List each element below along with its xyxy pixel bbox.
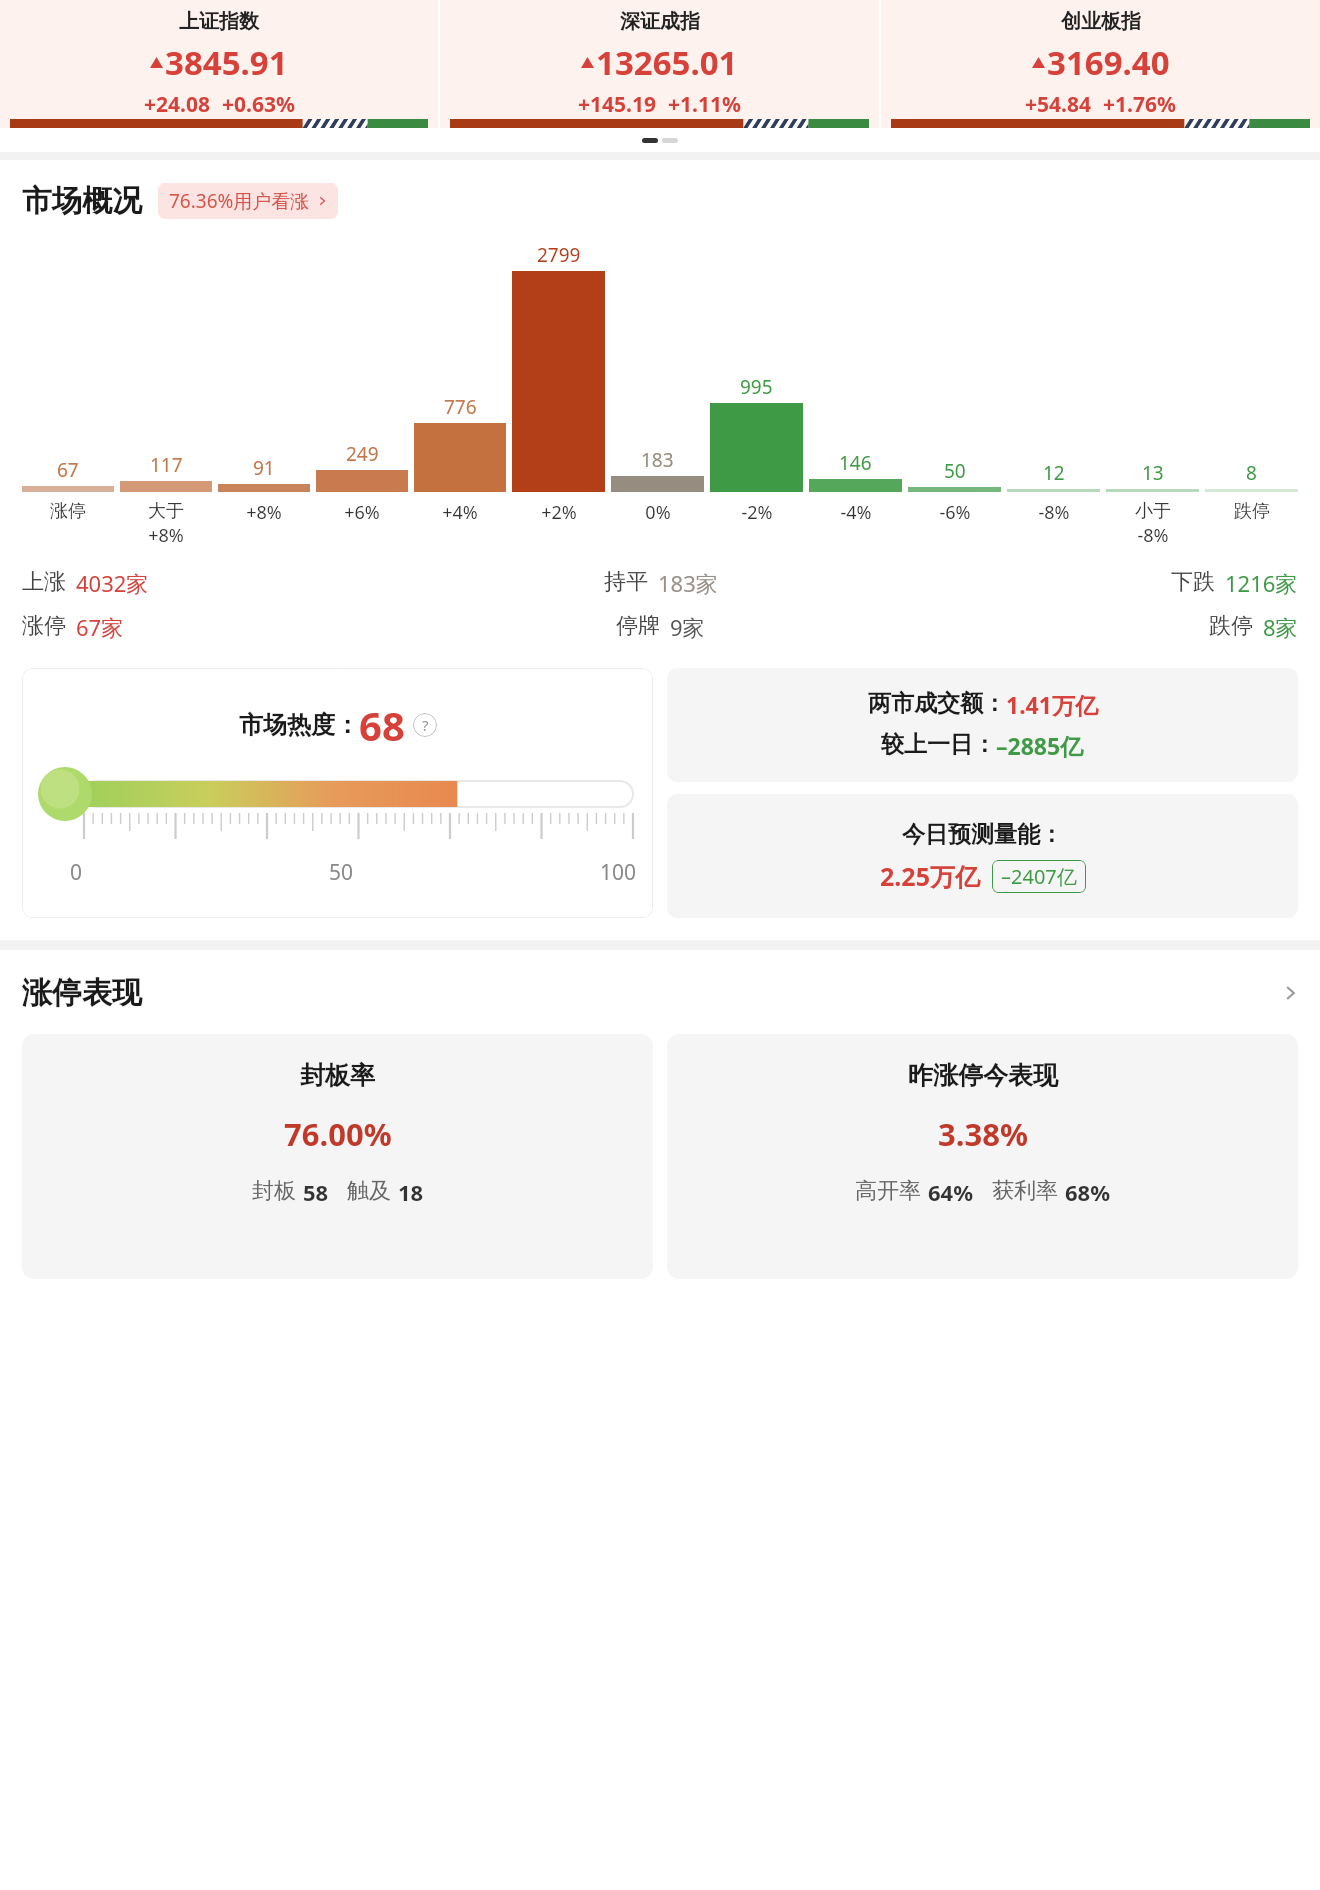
staticText: 2.25万亿 (880, 859, 980, 893)
staticText: 跌停 (1209, 612, 1253, 640)
staticText: 4032家 (76, 568, 149, 598)
staticText: 183家 (658, 568, 718, 598)
staticText: 上证指数 (179, 9, 259, 34)
staticText: 68 (359, 698, 405, 752)
staticText: 995 (740, 374, 773, 400)
staticText: 大于 +8% (148, 500, 184, 548)
staticText: 封板率 (300, 1060, 375, 1091)
staticText: 持平 (604, 568, 648, 596)
staticText: 50 (329, 858, 354, 887)
staticText: +24.08 (144, 90, 210, 119)
staticText: +2% (541, 500, 577, 525)
staticText: +4% (442, 500, 478, 525)
staticText: +1.11% (668, 90, 741, 119)
button[interactable]: 昨涨停今表现 (667, 1034, 1298, 1279)
staticText: -4% (840, 500, 872, 525)
button[interactable]: 封板率 (22, 1034, 653, 1279)
staticText: 117 (150, 452, 183, 478)
staticText: +54.84 (1025, 90, 1091, 119)
staticText: –2407亿 (1001, 863, 1077, 890)
staticText: 涨停 (22, 612, 66, 640)
staticText: 市场热度： (239, 710, 359, 740)
staticText: 67 (57, 457, 79, 483)
staticText: 76.00% (284, 1113, 392, 1155)
staticText: 249 (346, 441, 379, 467)
staticText: +145.19 (578, 90, 656, 119)
staticText: 67家 (76, 612, 124, 642)
button[interactable]: 76.36%用户看涨 (158, 183, 338, 219)
staticText: 1.41万亿 (1006, 689, 1098, 720)
staticText: –2885亿 (996, 730, 1084, 761)
staticText: +6% (344, 500, 380, 525)
staticText: 9家 (670, 612, 705, 642)
staticText: +1.76% (1103, 90, 1176, 119)
staticText: 776 (444, 394, 477, 420)
button[interactable]: 市场热度： (22, 668, 653, 918)
staticText: 3169.40 (1047, 40, 1170, 85)
staticText: 2799 (537, 242, 581, 268)
staticText: ? (422, 715, 429, 735)
staticText: 两市成交额： (868, 689, 1006, 718)
staticText: 下跌 (1171, 568, 1215, 596)
staticText: 1216家 (1225, 568, 1298, 598)
staticText: -6% (939, 500, 971, 525)
button[interactable]: 说明 (413, 713, 437, 737)
button[interactable]: 今日预测量能： (667, 794, 1298, 918)
staticText: 昨涨停今表现 (908, 1060, 1058, 1091)
staticText: 12 (1043, 460, 1065, 486)
button[interactable]: 深证成指 (440, 0, 879, 128)
button[interactable]: 两市成交额： (667, 668, 1298, 782)
staticText: 8 (1246, 460, 1257, 486)
staticText: -2% (741, 500, 773, 525)
staticText: 创业板指 (1061, 9, 1141, 34)
staticText: 68% (1065, 1177, 1111, 1207)
staticText: 13265.01 (596, 40, 738, 85)
staticText: +0.63% (222, 90, 295, 119)
staticText: 64% (928, 1177, 974, 1207)
button[interactable]: 上证指数 (0, 0, 438, 128)
staticText: 上涨 (22, 568, 66, 596)
staticText: +8% (246, 500, 282, 525)
staticText: 小于 -8% (1135, 500, 1171, 548)
staticText: 停牌 (616, 612, 660, 640)
staticText: 今日预测量能： (902, 820, 1063, 849)
staticText: 高开率 (855, 1177, 921, 1205)
staticText: 跌停 (1234, 500, 1270, 523)
staticText: 市场概况 (22, 182, 142, 220)
staticText: 涨停 (50, 500, 86, 523)
staticText: 50 (944, 458, 966, 484)
staticText: 获利率 (992, 1177, 1058, 1205)
staticText: 146 (839, 450, 872, 476)
staticText: 0% (645, 500, 671, 525)
staticText: 58 (303, 1177, 329, 1207)
staticText: 183 (641, 447, 674, 473)
staticText: 涨停表现 (22, 974, 142, 1012)
button[interactable]: 涨停表现 (22, 974, 1298, 1012)
staticText: 3.38% (938, 1113, 1028, 1155)
staticText: 封板 (252, 1177, 296, 1205)
staticText: 3845.91 (165, 40, 288, 85)
staticText: 91 (253, 455, 275, 481)
staticText: 76.36%用户看涨 (169, 188, 310, 214)
staticText: 0 (70, 858, 83, 887)
staticText: 较上一日： (881, 730, 996, 759)
button[interactable]: 创业板指 (881, 0, 1320, 128)
staticText: 深证成指 (620, 9, 700, 34)
staticText: 18 (398, 1177, 424, 1207)
staticText: 8家 (1263, 612, 1298, 642)
staticText: 触及 (347, 1177, 391, 1205)
staticText: 100 (600, 858, 637, 887)
staticText: 13 (1142, 460, 1164, 486)
staticText: -8% (1038, 500, 1070, 525)
